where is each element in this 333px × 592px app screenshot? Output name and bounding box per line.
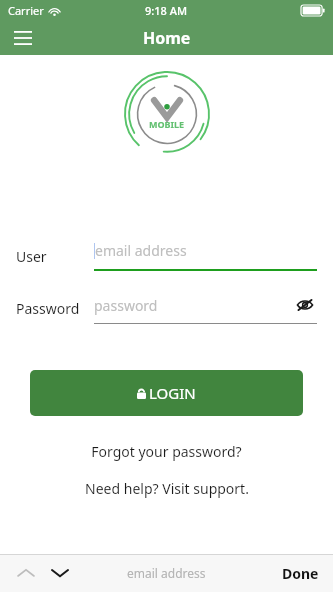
staticText: User — [16, 247, 94, 266]
button[interactable]: Menu — [8, 23, 38, 53]
button[interactable]: Next field — [46, 559, 74, 587]
button[interactable]: Previous field — [12, 559, 40, 587]
button[interactable]: Password — [16, 293, 317, 324]
button[interactable]: User — [16, 241, 317, 271]
staticText: 9:18 AM — [145, 3, 188, 18]
button[interactable]: LOGIN — [30, 370, 303, 416]
staticText: password — [94, 296, 293, 315]
staticText: Need help? Visit support. — [85, 479, 249, 498]
staticText: Done — [282, 564, 319, 583]
button[interactable]: Show password — [293, 293, 317, 317]
staticText: Forgot your password? — [91, 442, 242, 461]
staticText: LOGIN — [149, 383, 196, 403]
staticText: Carrier — [8, 3, 44, 18]
staticText: email address — [127, 565, 206, 581]
button[interactable]: Done — [278, 558, 323, 589]
staticText: email address — [95, 241, 187, 260]
staticText: MOBILE — [149, 118, 185, 130]
button[interactable]: Need help? Visit support. — [0, 479, 333, 498]
button[interactable]: Forgot your password? — [0, 442, 333, 461]
staticText: Home — [143, 27, 191, 49]
staticText: Password — [16, 299, 94, 318]
